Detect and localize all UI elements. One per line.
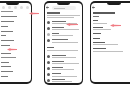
button[interactable] — [45, 77, 82, 83]
button[interactable] — [45, 31, 82, 37]
button[interactable] — [0, 64, 31, 69]
button[interactable] — [0, 24, 31, 29]
button[interactable] — [2, 6, 5, 9]
button[interactable] — [45, 71, 82, 77]
button[interactable] — [26, 6, 29, 9]
button[interactable] — [0, 74, 31, 79]
button[interactable] — [52, 6, 76, 10]
button[interactable] — [0, 51, 31, 56]
button[interactable] — [0, 38, 31, 43]
button[interactable] — [45, 19, 82, 25]
button[interactable]: Back — [92, 6, 95, 9]
button[interactable] — [0, 29, 31, 34]
button[interactable] — [0, 33, 31, 38]
button[interactable] — [45, 53, 82, 59]
button[interactable] — [45, 4, 82, 11]
button[interactable] — [0, 14, 31, 19]
button[interactable] — [0, 69, 31, 74]
button[interactable] — [0, 43, 31, 48]
button[interactable] — [0, 19, 31, 24]
button[interactable] — [45, 25, 82, 31]
button[interactable] — [14, 6, 17, 9]
button[interactable] — [8, 6, 11, 9]
button[interactable] — [20, 6, 23, 9]
button[interactable] — [91, 4, 130, 11]
button[interactable] — [0, 60, 31, 65]
button[interactable] — [45, 59, 82, 65]
button[interactable]: Back — [46, 6, 49, 9]
button[interactable] — [45, 37, 82, 43]
button[interactable] — [45, 65, 82, 71]
